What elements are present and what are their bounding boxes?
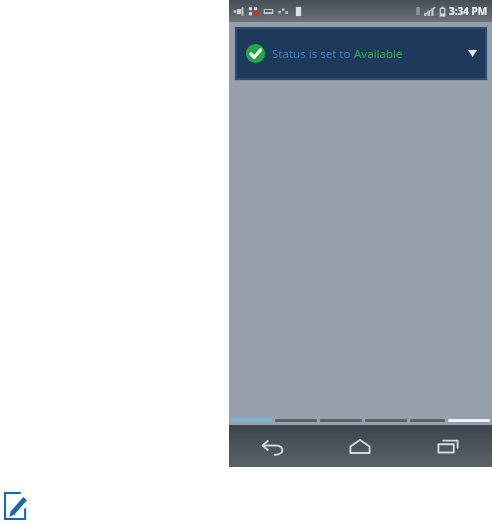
other: Edit — [4, 492, 28, 520]
staticText: Status is set to — [272, 46, 354, 62]
button[interactable]: Status is set to — [237, 29, 485, 78]
staticText: 3:34 PM — [449, 4, 488, 18]
button[interactable]: Back — [229, 425, 316, 467]
button[interactable]: Recent apps — [404, 425, 492, 467]
button[interactable]: Home — [316, 425, 404, 467]
staticText: Available — [354, 46, 403, 62]
